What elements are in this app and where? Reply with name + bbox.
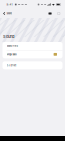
staticText: 9:41	[6, 3, 12, 6]
button[interactable]: More	[56, 9, 65, 18]
button[interactable]: DJ Effect	[2, 61, 62, 69]
button[interactable]: Sound	[0, 10, 13, 17]
button[interactable]: Sound Field	[2, 42, 62, 50]
button[interactable]: Equalizer	[44, 9, 56, 18]
staticText: DJ Effect	[6, 64, 16, 67]
button[interactable]: Mega Bass	[2, 50, 62, 58]
staticText: Sound Field	[6, 45, 17, 47]
staticText: Sound	[3, 34, 14, 39]
staticText: Mega Bass	[6, 53, 16, 56]
staticText: Sound	[6, 12, 11, 15]
